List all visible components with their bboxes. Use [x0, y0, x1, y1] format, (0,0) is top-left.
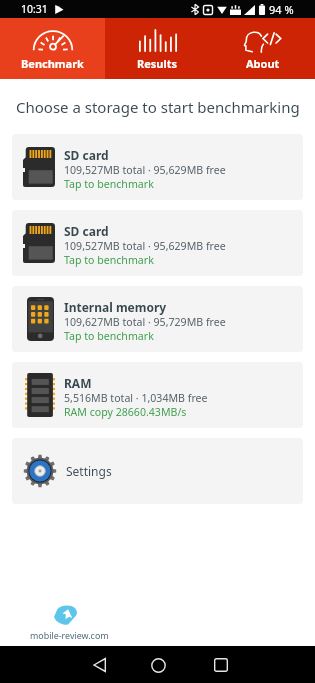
staticText: Settings: [66, 463, 112, 479]
staticText: 109,627MB total · 95,729MB free: [64, 315, 226, 329]
staticText: RAM: [64, 375, 92, 391]
staticText: 10:31: [21, 2, 48, 16]
staticText: Tap to benchmark: [64, 329, 154, 343]
staticText: mobile-review.com: [30, 629, 109, 641]
button[interactable]: Benchmark: [0, 18, 105, 79]
button[interactable]: Back: [82, 647, 118, 683]
button[interactable]: About: [210, 18, 315, 79]
button[interactable]: Results: [105, 18, 210, 79]
staticText: Internal memory: [64, 299, 167, 315]
button[interactable]: Recent apps: [203, 647, 239, 683]
button[interactable]: Internal memory: [12, 286, 303, 352]
staticText: RAM copy 28660.43MB/s: [64, 405, 187, 419]
staticText: Choose a storage to start benchmarking: [16, 97, 300, 117]
staticText: SD card: [64, 223, 109, 239]
staticText: Tap to benchmark: [64, 253, 154, 267]
staticText: SD card: [64, 147, 109, 163]
staticText: 94 %: [269, 2, 294, 17]
button[interactable]: SD card: [12, 210, 303, 276]
button[interactable]: Home: [140, 647, 176, 683]
button[interactable]: RAM: [12, 362, 303, 428]
staticText: Tap to benchmark: [64, 177, 154, 191]
staticText: Results: [137, 56, 178, 71]
button[interactable]: Settings: [12, 438, 303, 504]
staticText: 5,516MB total · 1,034MB free: [64, 391, 208, 405]
staticText: About: [246, 56, 280, 71]
staticText: 109,527MB total · 95,629MB free: [64, 239, 226, 253]
staticText: Benchmark: [21, 56, 84, 71]
staticText: 109,527MB total · 95,629MB free: [64, 163, 226, 177]
button[interactable]: SD card: [12, 134, 303, 200]
